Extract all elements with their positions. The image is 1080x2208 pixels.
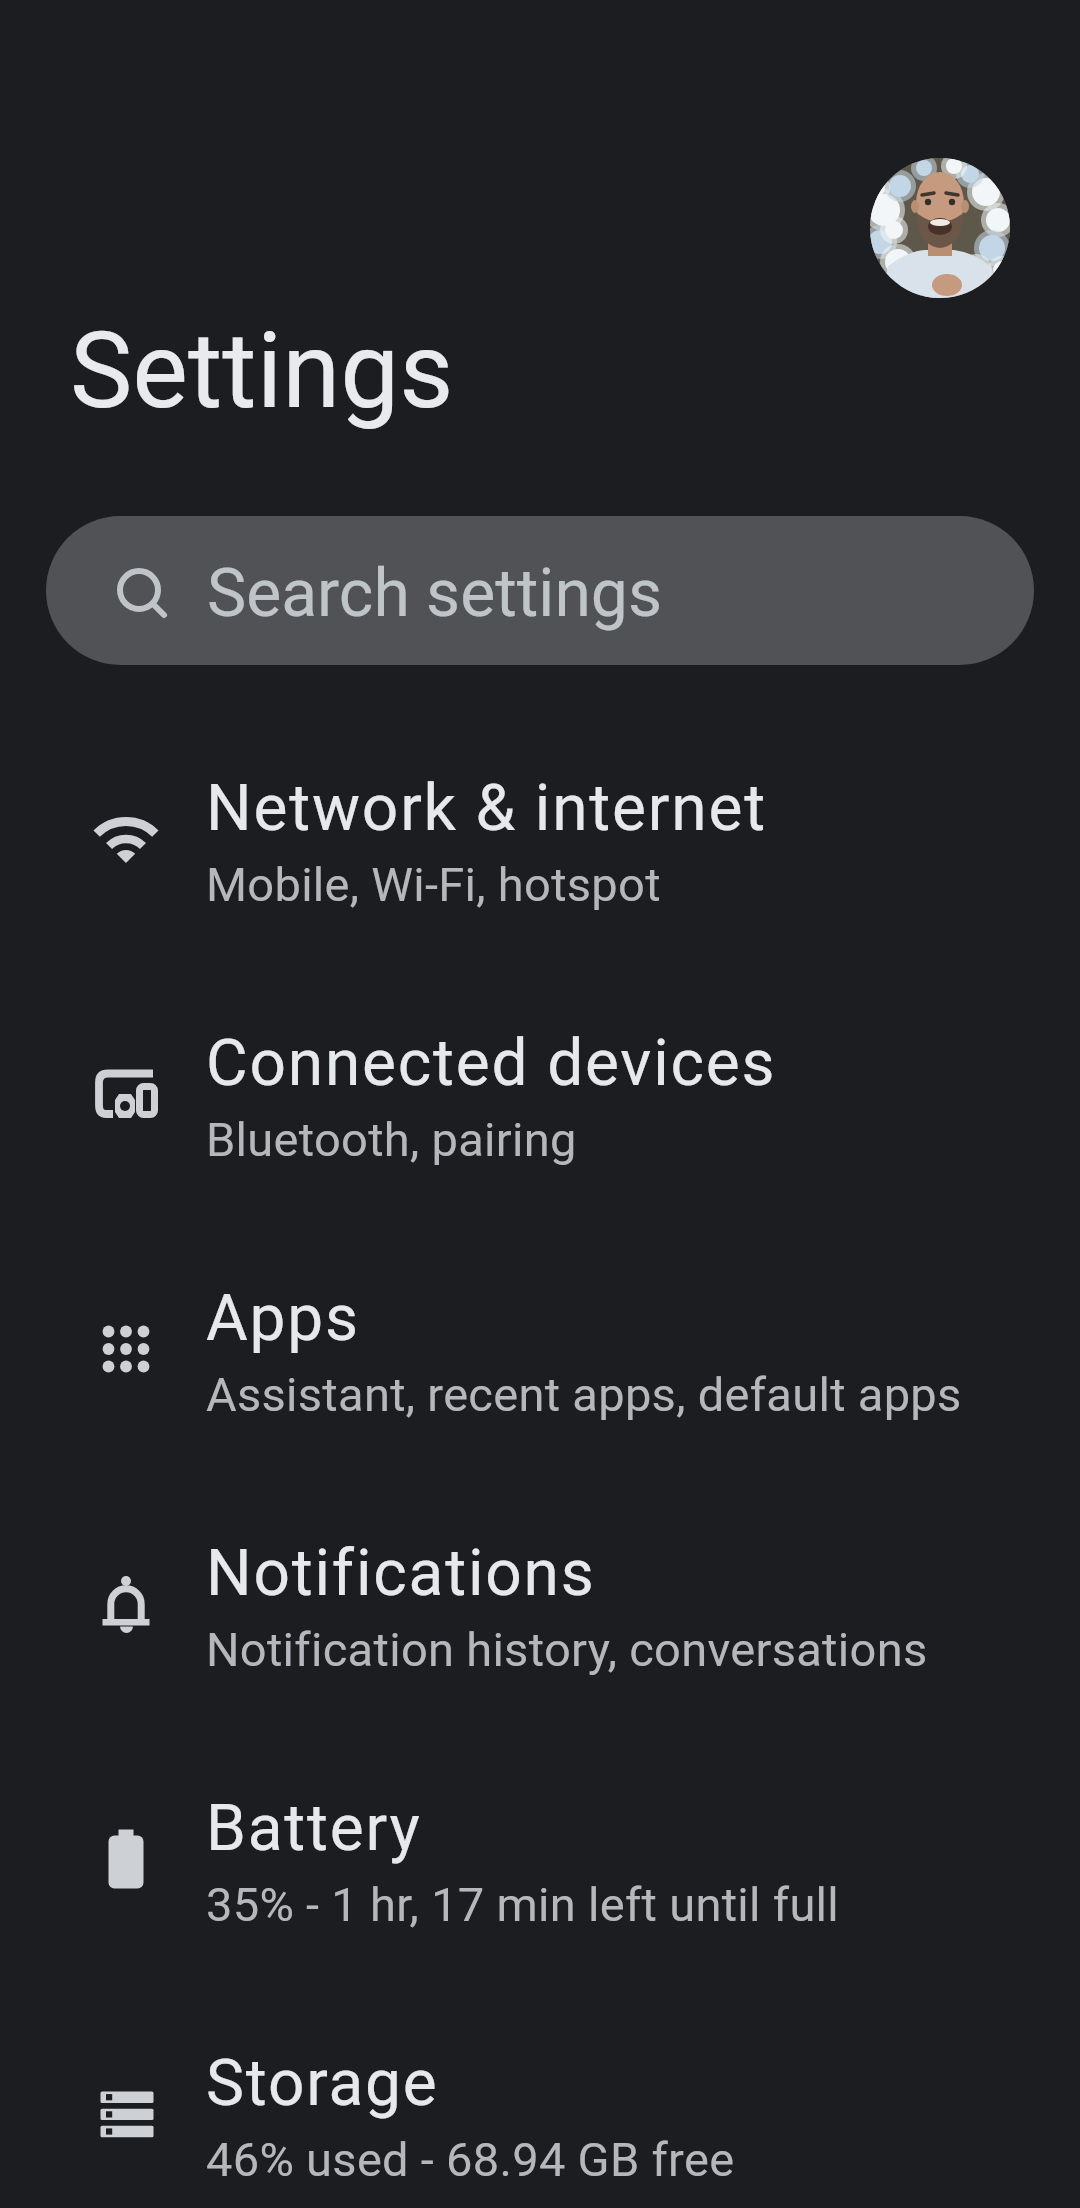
staticText: 46% used - 68.94 GB free: [206, 2132, 735, 2187]
button[interactable]: Storage: [0, 1986, 1080, 2208]
staticText: Notification history, conversations: [206, 1622, 928, 1677]
button[interactable]: Search settings: [46, 516, 1034, 665]
button[interactable]: Network & internet: [0, 711, 1080, 966]
button[interactable]: Battery: [0, 1731, 1080, 1986]
staticText: Settings: [70, 310, 454, 433]
staticText: Connected devices: [206, 1026, 777, 1101]
staticText: Notifications: [206, 1536, 596, 1611]
staticText: Apps: [206, 1281, 360, 1356]
staticText: Battery: [206, 1791, 422, 1866]
button[interactable]: [870, 158, 1010, 298]
staticText: Search settings: [207, 555, 662, 632]
staticText: Assistant, recent apps, default apps: [206, 1367, 962, 1422]
staticText: Network & internet: [206, 771, 767, 846]
staticText: 35% - 1 hr, 17 min left until full: [206, 1877, 840, 1932]
button[interactable]: Apps: [0, 1221, 1080, 1476]
staticText: Storage: [206, 2046, 439, 2121]
button[interactable]: Notifications: [0, 1476, 1080, 1731]
staticText: Mobile, Wi-Fi, hotspot: [206, 857, 661, 912]
staticText: Bluetooth, pairing: [206, 1112, 577, 1167]
button[interactable]: Connected devices: [0, 966, 1080, 1221]
